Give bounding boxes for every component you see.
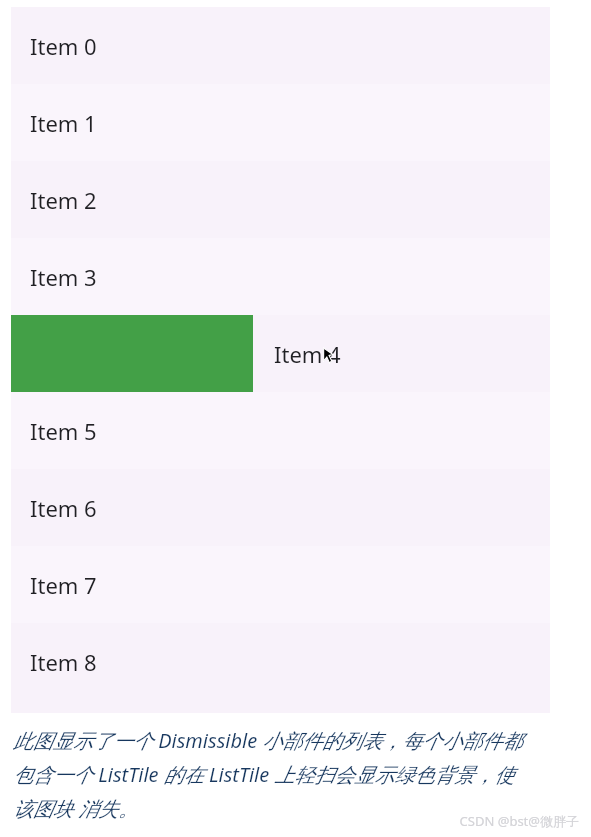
button[interactable]: Item 2	[11, 161, 550, 238]
staticText: Item 4	[274, 339, 341, 369]
button[interactable]: Item 1	[11, 84, 550, 161]
staticText: Item 3	[30, 262, 97, 292]
staticText: Item 6	[30, 493, 97, 523]
button[interactable]: Item 8	[11, 623, 550, 700]
staticText: Item 7	[30, 570, 97, 600]
staticText: 包含一个 ListTile 的在 ListTile 上轻扫会显示绿色背景，使	[13, 761, 515, 788]
button[interactable]: Item 3	[11, 238, 550, 315]
button[interactable]: Item 0	[11, 7, 550, 84]
staticText: CSDN @bst@微胖子	[459, 812, 579, 830]
staticText: Item 5	[30, 416, 97, 446]
button[interactable]: Item 7	[11, 546, 550, 623]
button[interactable]: Item 5	[11, 392, 550, 469]
button[interactable]: Item 4	[11, 315, 550, 392]
staticText: Item 0	[30, 31, 97, 61]
staticText: 此图显示了一个 Dismissible 小部件的列表，每个小部件都	[13, 727, 523, 754]
staticText: Item 1	[30, 108, 97, 138]
staticText: Item 8	[30, 647, 97, 677]
other: Pointer	[322, 348, 333, 363]
staticText: 该图块 消失。	[13, 795, 139, 822]
button[interactable]: Item 6	[11, 469, 550, 546]
staticText: Item 2	[30, 185, 97, 215]
